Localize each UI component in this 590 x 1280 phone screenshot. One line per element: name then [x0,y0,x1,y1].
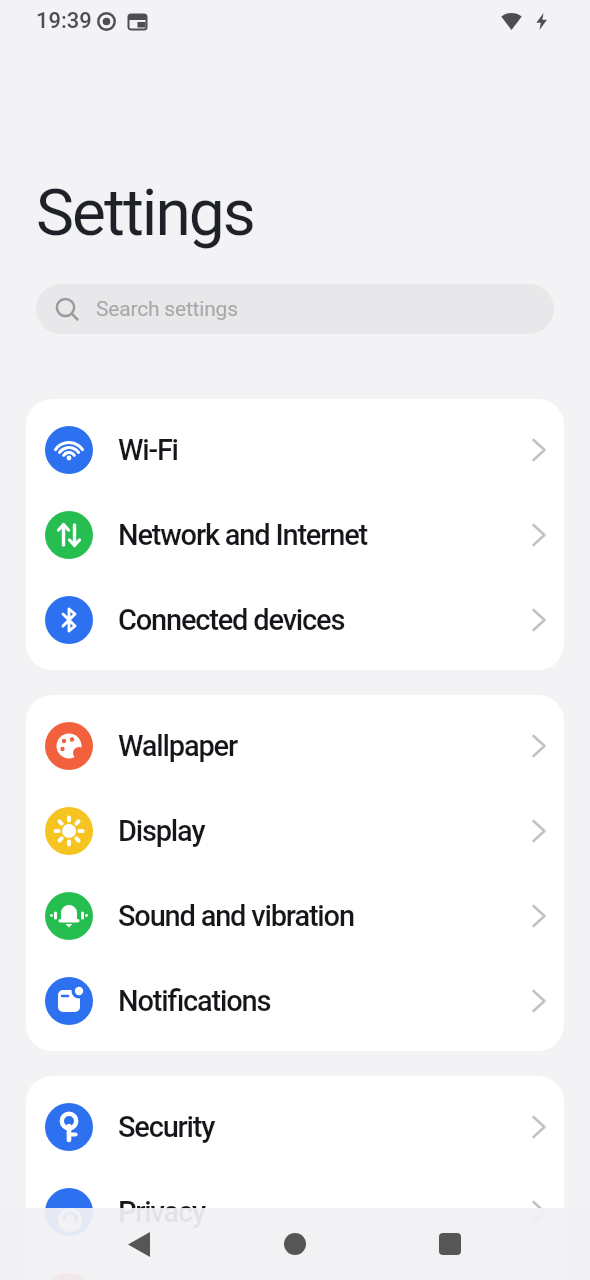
staticText: Connected devices [118,603,345,637]
button[interactable] [271,1220,319,1268]
staticText: Network and Internet [118,518,367,552]
button[interactable]: Privacy [26,1169,564,1254]
button[interactable] [115,1220,163,1268]
staticText: Sound and vibration [118,899,354,933]
staticText: Search settings [96,297,238,322]
button[interactable]: Network and Internet [26,492,564,577]
staticText: Notifications [118,984,271,1018]
button[interactable]: Display [26,788,564,873]
staticText: 19:39 [36,8,92,34]
staticText: Security [118,1110,215,1144]
staticText: Settings [36,176,254,251]
button[interactable]: Notifications [26,958,564,1043]
staticText: Wi-Fi [118,433,178,467]
button[interactable]: Search settings [36,284,554,334]
button[interactable]: Wallpaper [26,703,564,788]
button[interactable]: Connected devices [26,577,564,662]
button[interactable]: Wi-Fi [26,407,564,492]
button[interactable] [426,1220,474,1268]
button[interactable]: Security [26,1084,564,1169]
staticText: Display [118,814,205,848]
button[interactable]: Sound and vibration [26,873,564,958]
staticText: Wallpaper [118,729,237,763]
button[interactable]: Location [26,1254,564,1280]
staticText: Privacy [118,1195,205,1229]
